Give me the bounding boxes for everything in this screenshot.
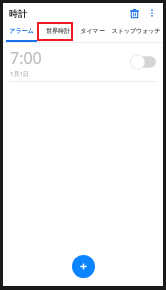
- button[interactable]: アラーム: [3, 23, 40, 42]
- staticText: 世界時計: [46, 27, 70, 35]
- button[interactable]: アラームを追加: [72, 255, 95, 278]
- button[interactable]: 7:00: [3, 43, 163, 81]
- staticText: アラーム: [9, 27, 34, 35]
- button[interactable]: タイマー: [76, 23, 109, 42]
- staticText: 時計: [9, 8, 27, 19]
- button[interactable]: 削除: [125, 4, 143, 22]
- button[interactable]: アラームをオンにする: [130, 54, 156, 70]
- staticText: 1月1日: [10, 70, 29, 78]
- button[interactable]: その他のオプション: [144, 5, 160, 21]
- button[interactable]: 世界時計: [40, 23, 76, 42]
- staticText: タイマー: [80, 27, 105, 35]
- button[interactable]: ストップウォッチ: [109, 23, 163, 42]
- staticText: ストップウォッチ: [111, 27, 161, 35]
- staticText: 7:00: [10, 47, 42, 69]
